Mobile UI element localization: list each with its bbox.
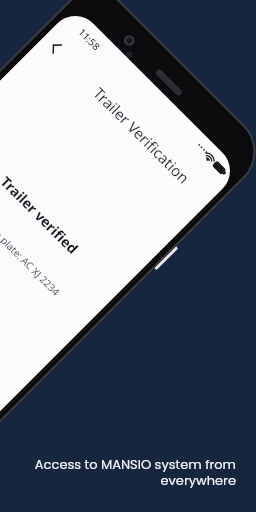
staticText: 11:58 <box>75 25 104 53</box>
button[interactable]: Back <box>36 29 70 62</box>
staticText: License plate: AC XJ 2234 <box>0 207 63 299</box>
staticText: Access to MANSIO system from everywhere <box>20 455 236 490</box>
staticText: Trailer verified <box>0 172 82 258</box>
staticText: Trailer Verification <box>89 83 194 188</box>
